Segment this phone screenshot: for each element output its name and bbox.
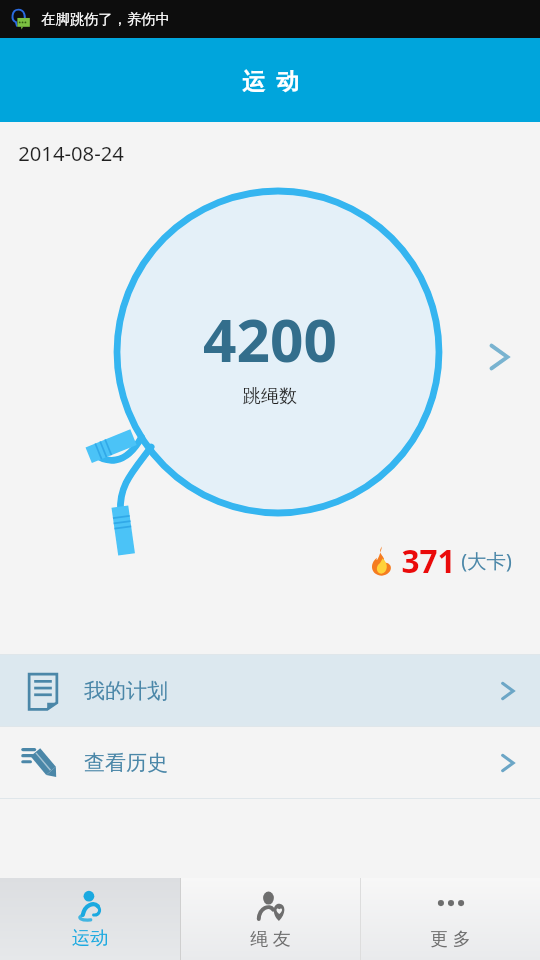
staticText: 我的计划 (84, 678, 168, 704)
staticText: 运 动 (242, 65, 299, 96)
staticText: 更 多 (430, 926, 471, 951)
staticText: 4200 (203, 299, 337, 379)
staticText: 跳绳数 (243, 385, 297, 408)
staticText: 查看历史 (84, 750, 168, 776)
staticText: 绳 友 (250, 926, 291, 951)
staticText: 在脚跳伤了，养伤中 (41, 10, 170, 28)
button[interactable]: 绳 友 (181, 878, 360, 960)
staticText: 运动 (72, 927, 108, 950)
staticText: 2014-08-24 (18, 139, 124, 167)
staticText: 371 (401, 539, 456, 582)
button[interactable]: 运动 (0, 878, 180, 960)
button[interactable]: 更 多 (361, 878, 540, 960)
button[interactable]: Next day (476, 334, 522, 380)
button[interactable]: 查看历史 (0, 727, 540, 798)
button[interactable]: 我的计划 (0, 655, 540, 726)
staticText: (大卡) (461, 547, 512, 574)
